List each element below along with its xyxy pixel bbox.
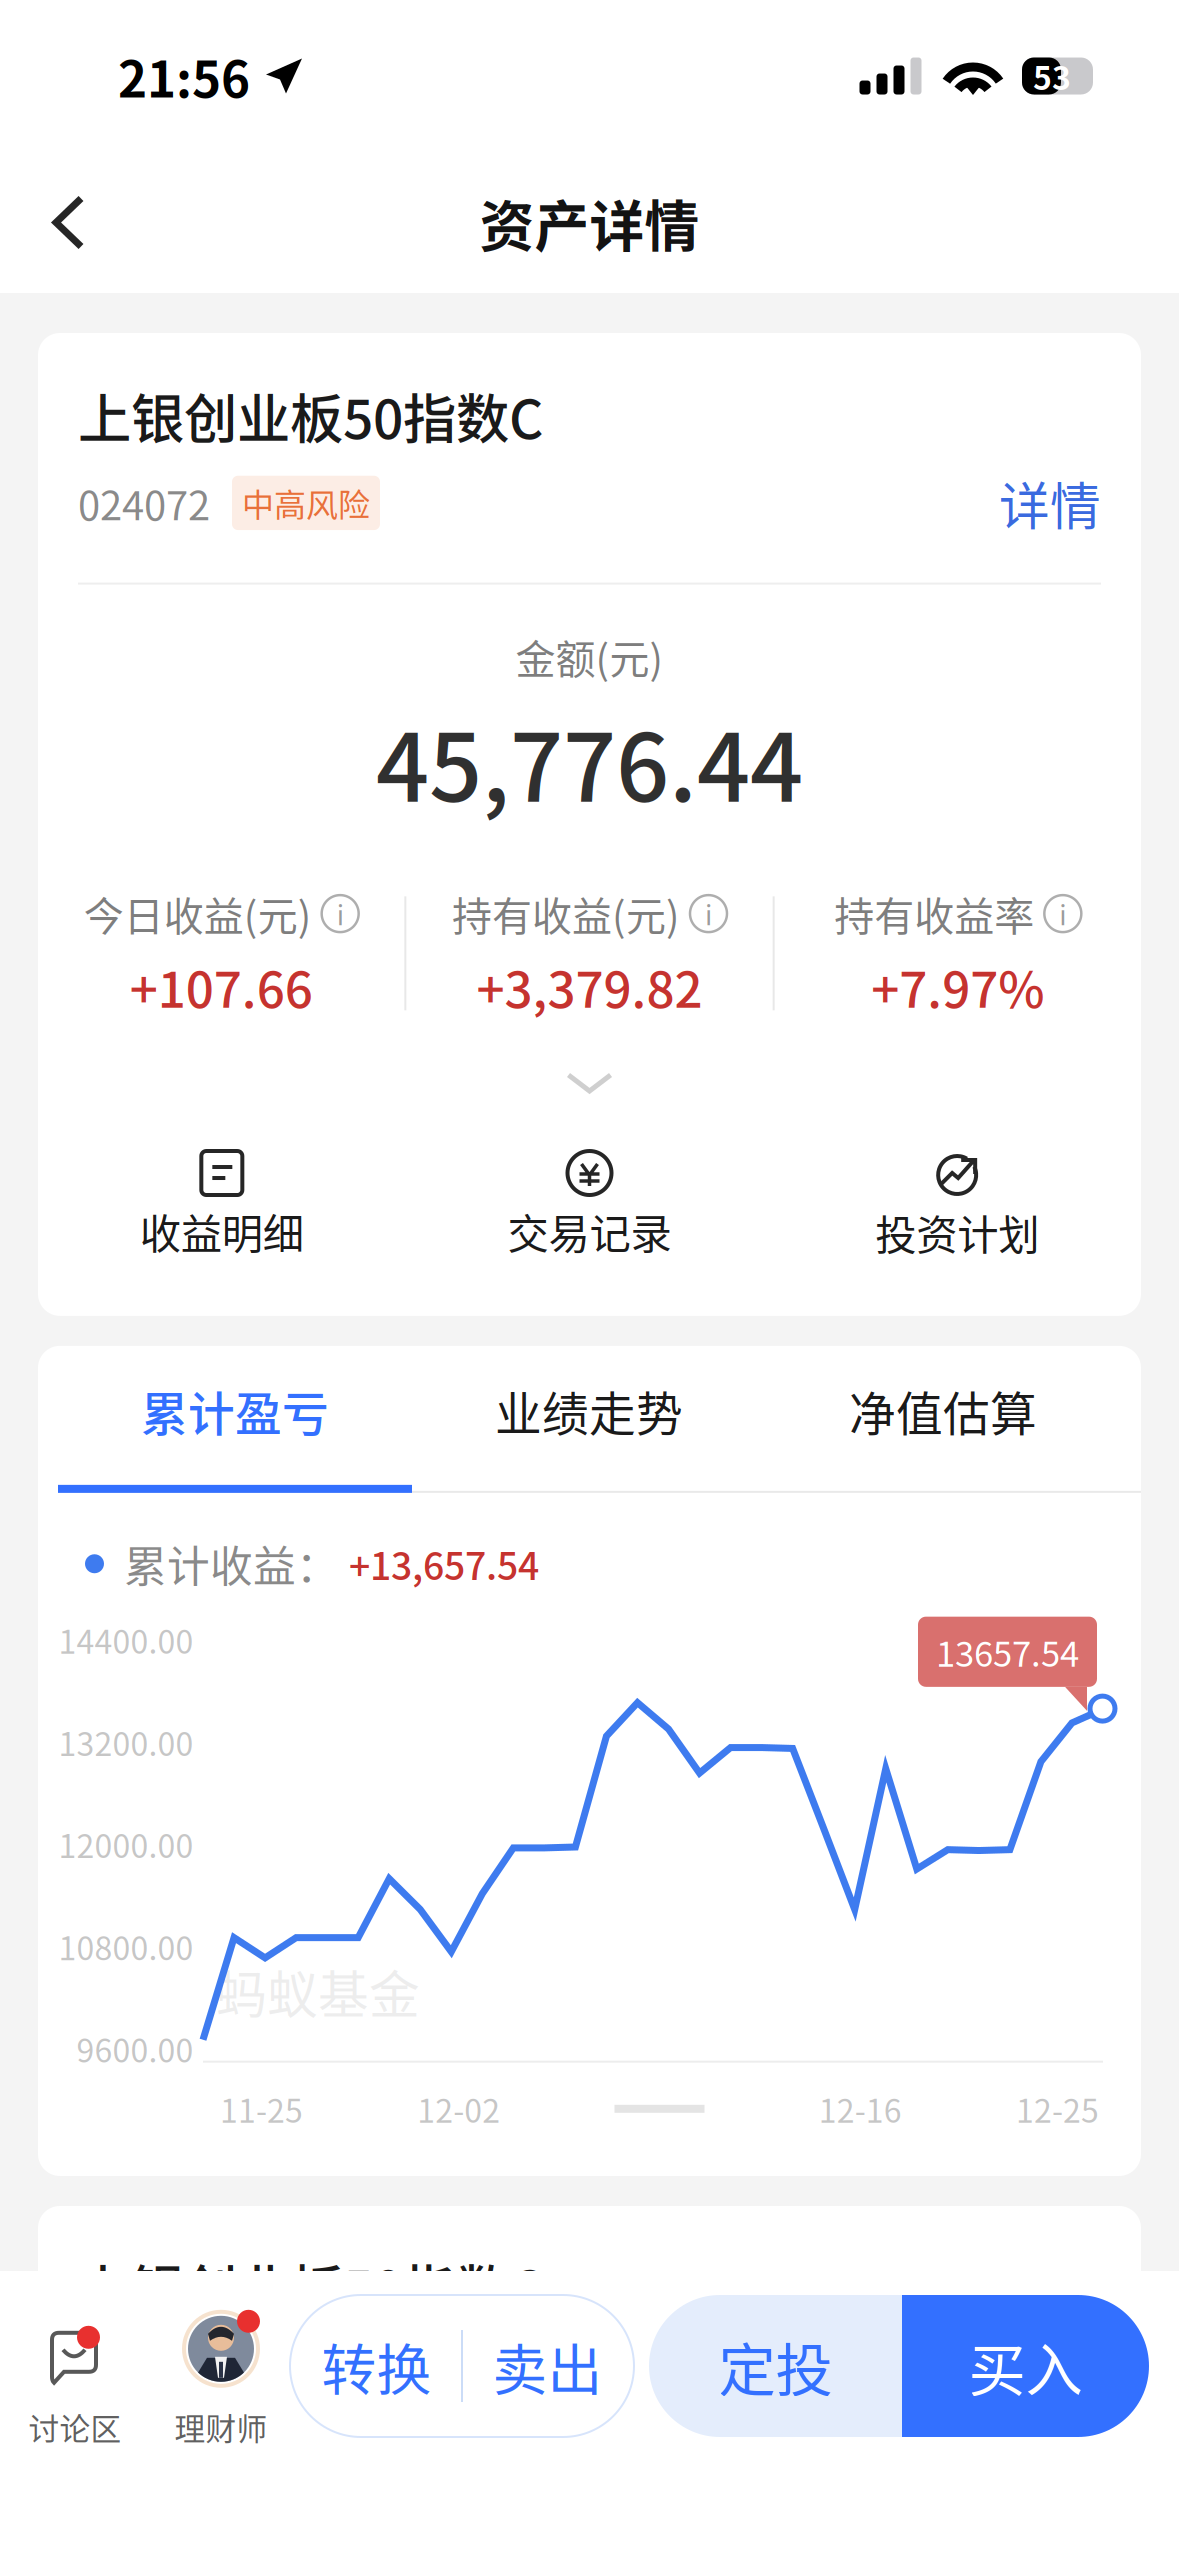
staticText: 金额(元) [515, 628, 663, 685]
staticText: 今日收益(元) [84, 885, 312, 943]
staticText: 买入 [968, 2324, 1082, 2407]
staticText: 业绩走势 [495, 1377, 683, 1444]
staticText: 理财师 [174, 2405, 267, 2449]
staticText: 12-25 [1016, 2086, 1099, 2132]
staticText: 卖出 [492, 2326, 602, 2406]
staticText: 21:56 [118, 40, 250, 112]
staticText: 累计收益： [124, 1533, 339, 1595]
staticText: 交易记录 [507, 1201, 671, 1261]
staticText: 中高风险 [242, 480, 370, 526]
staticText: 定投 [718, 2324, 832, 2407]
staticText: +7.97% [871, 951, 1044, 1022]
button[interactable]: 买入 [902, 2295, 1149, 2437]
staticText: 资产详情 [479, 183, 699, 262]
staticText: 蚂蚁基金 [216, 1955, 420, 2028]
button[interactable]: 累计盈亏 [58, 1348, 412, 1493]
button[interactable]: 返回 [0, 169, 125, 275]
staticText: 12000.00 [58, 1821, 193, 1867]
button[interactable]: 讨论区 [0, 2283, 152, 2449]
button[interactable]: 定投 [649, 2295, 902, 2437]
button[interactable]: 业绩走势 [412, 1348, 766, 1493]
staticText: 14400.00 [58, 1617, 193, 1663]
staticText: 收益明细 [140, 1201, 304, 1261]
button[interactable]: 收益明细 [38, 1151, 406, 1261]
button[interactable]: 卖出 [463, 2295, 632, 2437]
staticText: 53 [1033, 53, 1071, 99]
button[interactable]: 理财师 [152, 2283, 290, 2449]
staticText: +13,657.54 [349, 1537, 539, 1591]
staticText: i [337, 894, 344, 933]
staticText: 上银创业板50指数C [78, 2248, 543, 2325]
staticText: 投资计划 [875, 1202, 1039, 1262]
staticText: +3,379.82 [476, 951, 702, 1022]
staticText: 转换 [321, 2326, 431, 2406]
button[interactable]: 交易记录 [406, 1151, 773, 1261]
staticText: 持有收益(元) [452, 885, 680, 943]
button[interactable]: 投资计划 [773, 1150, 1141, 1262]
staticText: 45,776.44 [376, 693, 803, 829]
staticText: 11-25 [220, 2086, 303, 2132]
staticText: 净值估算 [849, 1377, 1037, 1444]
staticText: 13657.54 [936, 1627, 1079, 1677]
staticText: 上银创业板50指数C [78, 377, 543, 454]
staticText: 9600.00 [76, 2025, 193, 2072]
button[interactable]: 净值估算 [766, 1348, 1120, 1493]
button[interactable]: 详情 [999, 466, 1101, 540]
staticText: 12-16 [819, 2086, 902, 2132]
staticText: +107.66 [130, 951, 313, 1022]
staticText: 13200.00 [58, 1719, 193, 1765]
staticText: i [1059, 894, 1066, 933]
staticText: 详情 [999, 466, 1101, 540]
staticText: 024072 [78, 474, 210, 532]
staticText: 持有收益率 [834, 885, 1034, 943]
staticText: 累计盈亏 [141, 1377, 329, 1444]
staticText: 10800.00 [58, 1923, 193, 1969]
staticText: 12-02 [417, 2086, 500, 2132]
button[interactable]: 转换 [292, 2295, 461, 2437]
staticText: 讨论区 [28, 2405, 121, 2449]
staticText: i [705, 894, 712, 933]
button[interactable]: 展开 [38, 1022, 1141, 1150]
